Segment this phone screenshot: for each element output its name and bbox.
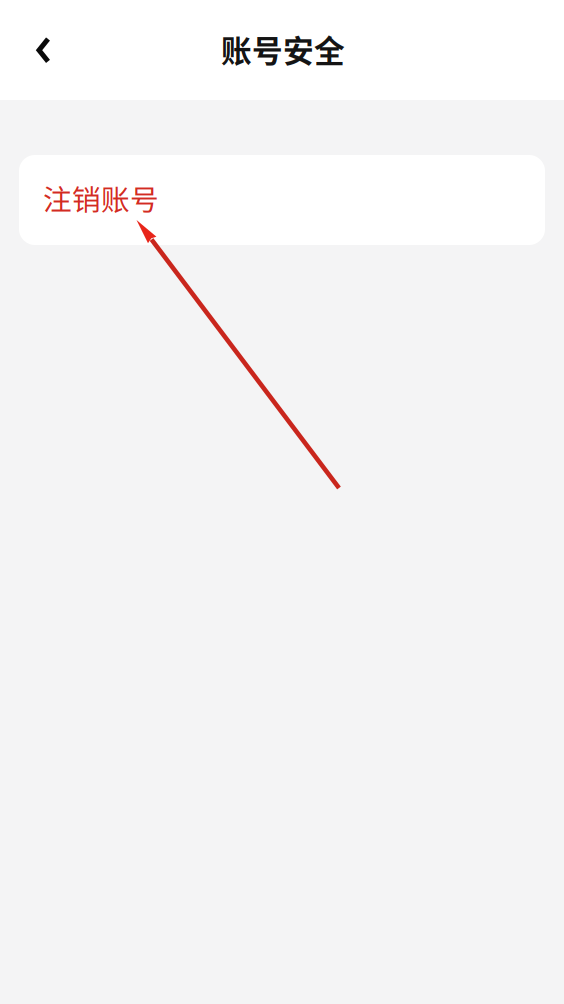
button[interactable]: 注销账号	[19, 155, 545, 245]
staticText: 账号安全	[221, 27, 345, 71]
button[interactable]: Back	[18, 22, 74, 78]
staticText: 注销账号	[43, 177, 159, 219]
